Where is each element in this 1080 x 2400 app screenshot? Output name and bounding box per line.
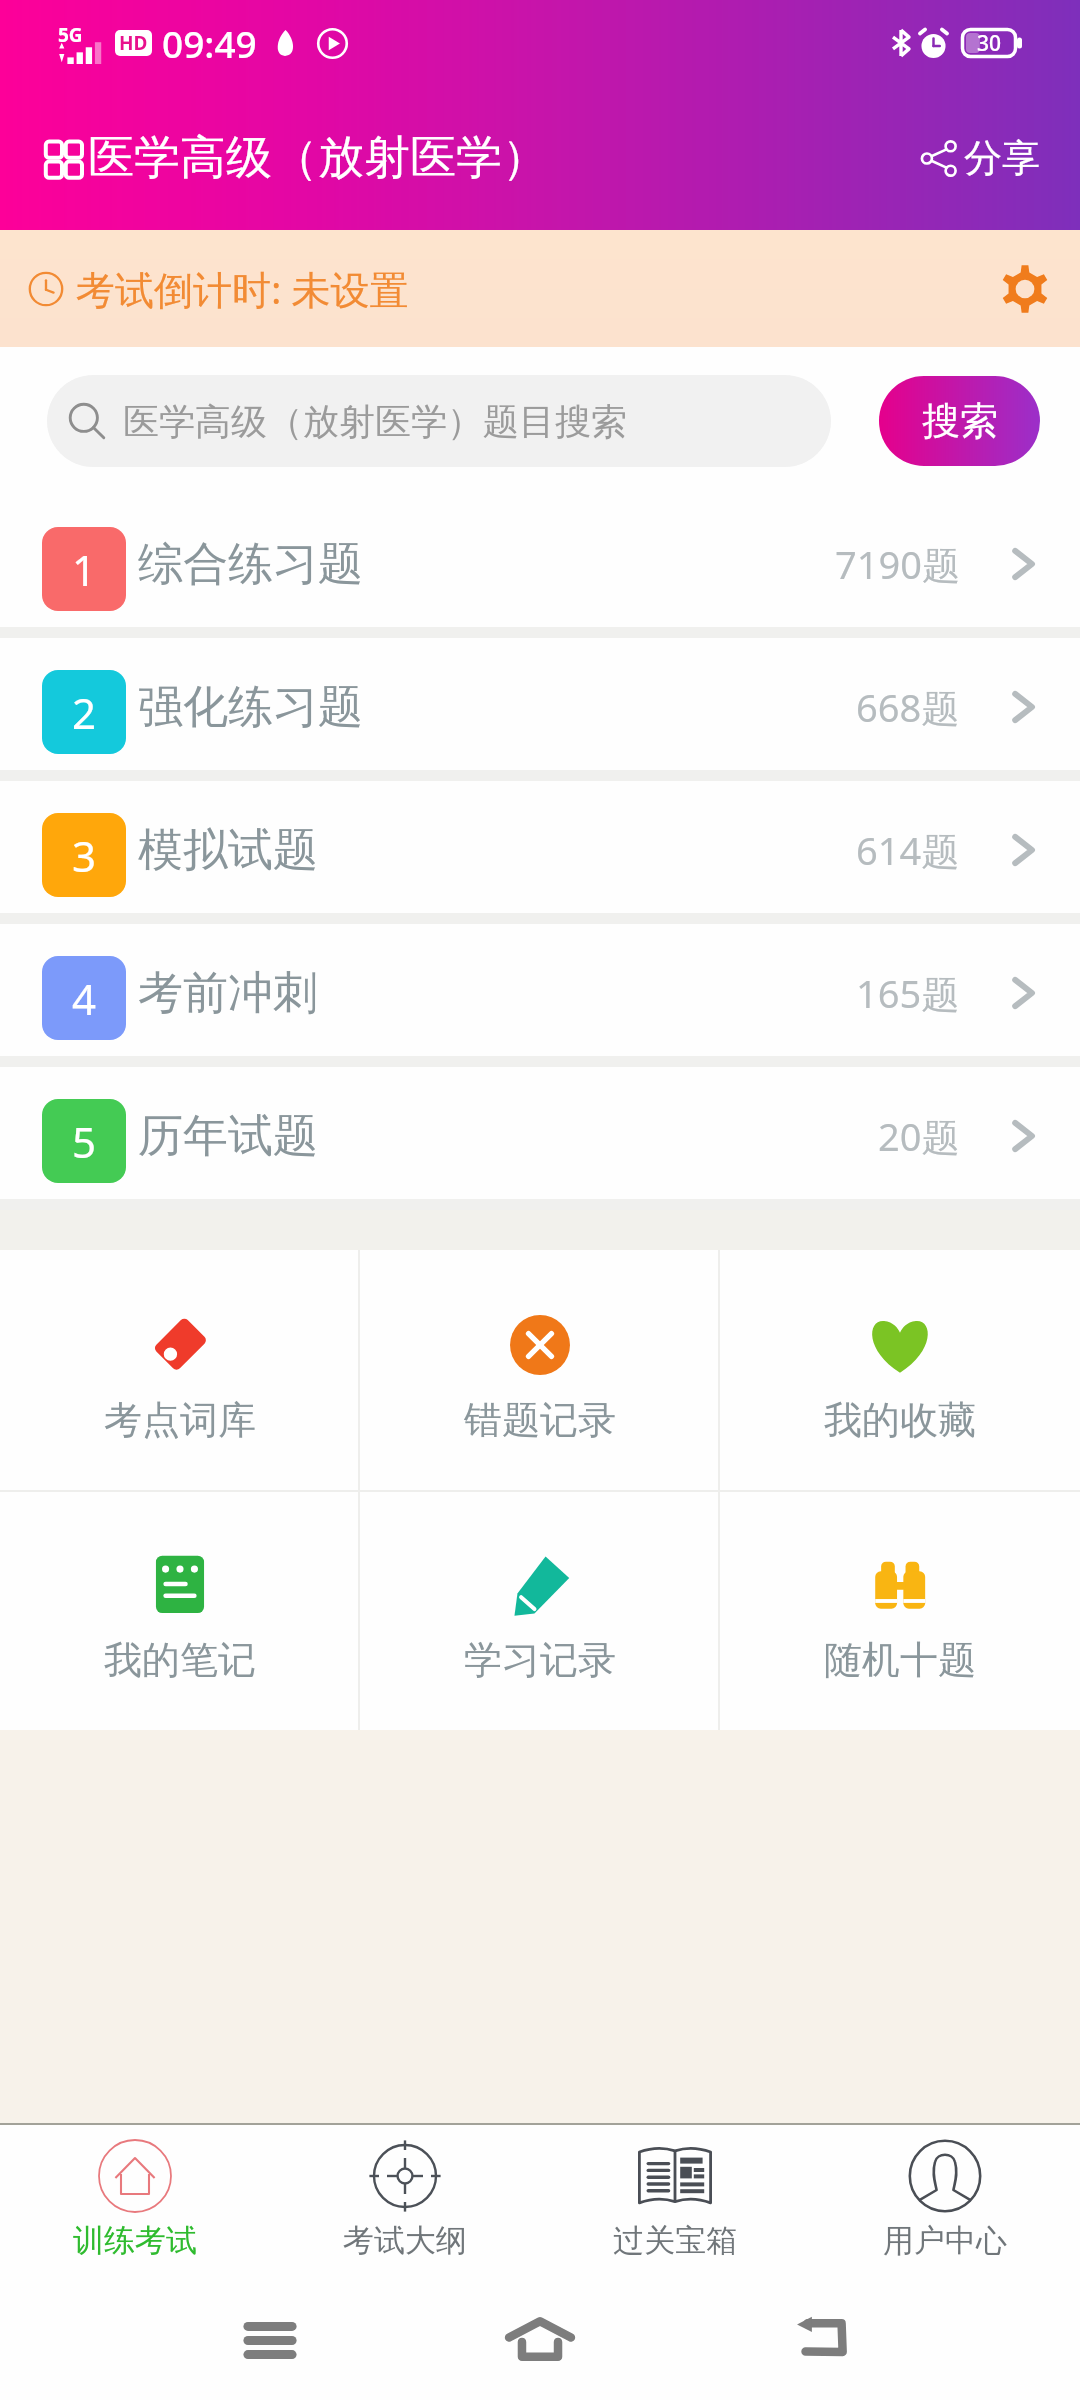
staticText: 1: [72, 541, 97, 598]
staticText: 历年试题: [138, 1108, 318, 1165]
staticText: 09:49: [162, 18, 257, 68]
staticText: 7190题: [835, 538, 960, 590]
staticText: 训练考试: [73, 2221, 197, 2260]
staticText: 30: [977, 29, 1002, 58]
button[interactable]: 过关宝箱: [540, 2125, 810, 2280]
staticText: 考试大纲: [343, 2221, 467, 2260]
staticText: 我的笔记: [104, 1636, 256, 1684]
button[interactable]: Back: [780, 2295, 864, 2379]
staticText: 考点词库: [104, 1396, 256, 1444]
button[interactable]: 用户中心: [810, 2125, 1080, 2280]
button[interactable]: 错题记录: [360, 1250, 720, 1490]
staticText: 用户中心: [883, 2221, 1007, 2260]
staticText: 强化练习题: [138, 679, 363, 736]
button[interactable]: 学习记录: [360, 1490, 720, 1730]
button[interactable]: 设置: [992, 256, 1058, 322]
button[interactable]: 随机十题: [720, 1490, 1080, 1730]
staticText: 614题: [856, 824, 960, 876]
button[interactable]: 4: [0, 924, 1080, 1056]
staticText: 2: [72, 684, 97, 741]
staticText: HD: [119, 30, 148, 56]
staticText: 模拟试题: [138, 822, 318, 879]
button[interactable]: 5: [0, 1067, 1080, 1199]
button[interactable]: 训练考试: [0, 2125, 270, 2280]
staticText: 5G: [58, 22, 83, 48]
staticText: 考前冲刺: [138, 965, 318, 1022]
staticText: 我的收藏: [824, 1396, 976, 1444]
button[interactable]: Recents: [228, 2298, 312, 2382]
button[interactable]: 考试大纲: [270, 2125, 540, 2280]
staticText: 综合练习题: [138, 536, 363, 593]
staticText: 过关宝箱: [613, 2221, 737, 2260]
button[interactable]: 2: [0, 638, 1080, 770]
staticText: 错题记录: [464, 1396, 616, 1444]
button[interactable]: 分享: [921, 134, 1040, 182]
staticText: 考试倒计时: 未设置: [76, 262, 409, 315]
button[interactable]: 医学高级（放射医学）题目搜索: [47, 375, 831, 467]
staticText: 668题: [856, 681, 960, 733]
staticText: 医学高级（放射医学）: [88, 129, 548, 187]
staticText: 3: [72, 827, 97, 884]
staticText: 学习记录: [464, 1636, 616, 1684]
button[interactable]: 3: [0, 781, 1080, 913]
staticText: 搜索: [922, 397, 998, 445]
staticText: 5: [72, 1113, 97, 1170]
button[interactable]: 1: [0, 495, 1080, 627]
button[interactable]: 搜索: [879, 376, 1040, 466]
button[interactable]: Home: [498, 2299, 582, 2383]
staticText: 分享: [964, 134, 1040, 182]
button[interactable]: 我的笔记: [0, 1490, 360, 1730]
staticText: 165题: [856, 967, 960, 1019]
staticText: 医学高级（放射医学）题目搜索: [123, 399, 627, 444]
staticText: 20题: [878, 1110, 960, 1162]
button[interactable]: 考点词库: [0, 1250, 360, 1490]
button[interactable]: 我的收藏: [720, 1250, 1080, 1490]
staticText: 随机十题: [824, 1636, 976, 1684]
staticText: 4: [72, 970, 97, 1027]
